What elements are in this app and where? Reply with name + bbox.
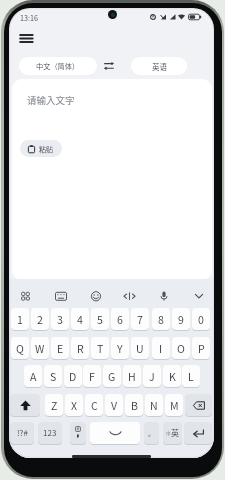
staticText: Y xyxy=(117,341,123,356)
button[interactable]: H xyxy=(123,365,141,387)
staticText: 13:16 xyxy=(20,13,38,23)
button[interactable]: 4 xyxy=(71,308,89,330)
button[interactable]: 粘贴 xyxy=(20,140,62,157)
staticText: 英语 xyxy=(152,61,167,72)
staticText: R xyxy=(77,341,84,356)
staticText: Q xyxy=(16,341,24,356)
staticText: 6 xyxy=(117,312,123,327)
staticText: 中文（简体） xyxy=(36,61,80,71)
staticText: X xyxy=(71,398,78,413)
button[interactable]: 5 xyxy=(91,308,109,330)
button[interactable]: Y xyxy=(111,337,129,359)
button[interactable]: T xyxy=(91,337,109,359)
staticText: 粘贴 xyxy=(39,144,53,154)
staticText: G xyxy=(108,369,116,384)
button[interactable]: K xyxy=(163,365,181,387)
button[interactable]: 7 xyxy=(131,308,149,330)
staticText: B xyxy=(131,398,138,413)
button[interactable]: 3 xyxy=(51,308,69,330)
button[interactable]: 9 xyxy=(172,308,190,330)
button[interactable] xyxy=(10,394,40,416)
staticText: 3 xyxy=(57,312,63,327)
button[interactable]: 中文（简体） xyxy=(19,57,97,75)
button[interactable]: S xyxy=(44,365,62,387)
staticText: P xyxy=(198,341,205,356)
button[interactable] xyxy=(70,422,86,444)
staticText: 中 xyxy=(166,430,171,437)
staticText: 9 xyxy=(178,312,184,327)
staticText: 5 xyxy=(97,312,103,327)
button[interactable]: D xyxy=(64,365,82,387)
button[interactable]: B xyxy=(125,394,143,416)
staticText: 123 xyxy=(43,427,57,439)
staticText: T xyxy=(97,341,104,356)
staticText: 。 xyxy=(148,428,155,438)
staticText: L xyxy=(188,369,194,384)
staticText: W xyxy=(35,341,45,356)
staticText: 英 xyxy=(171,427,179,439)
staticText: N xyxy=(150,398,158,413)
button[interactable]: 6 xyxy=(111,308,129,330)
button[interactable]: Z xyxy=(45,394,63,416)
staticText: S xyxy=(50,369,57,384)
staticText: 7 xyxy=(137,312,143,327)
button[interactable]: 0 xyxy=(192,308,210,330)
button[interactable]: 1 xyxy=(11,308,29,330)
staticText: F xyxy=(89,369,95,384)
button[interactable] xyxy=(184,422,212,444)
button[interactable]: P xyxy=(192,337,210,359)
button[interactable]: I xyxy=(152,337,170,359)
staticText: 8 xyxy=(158,312,164,327)
staticText: 2 xyxy=(37,312,43,327)
button[interactable]: 2 xyxy=(31,308,49,330)
staticText: J xyxy=(149,369,155,384)
staticText: E xyxy=(57,341,64,356)
button[interactable]: V xyxy=(105,394,123,416)
button[interactable]: C xyxy=(85,394,103,416)
button[interactable] xyxy=(90,422,140,444)
button[interactable]: 。 xyxy=(144,422,159,444)
button[interactable]: A xyxy=(24,365,42,387)
button[interactable]: G xyxy=(103,365,121,387)
button[interactable] xyxy=(103,61,115,71)
button[interactable]: F xyxy=(83,365,101,387)
button[interactable]: M xyxy=(165,394,183,416)
button[interactable]: U xyxy=(131,337,149,359)
staticText: I xyxy=(159,341,163,356)
staticText: 1 xyxy=(17,312,23,327)
button[interactable]: X xyxy=(65,394,83,416)
staticText: U xyxy=(136,341,144,356)
staticText: C xyxy=(91,398,98,413)
staticText: !?# xyxy=(17,427,28,439)
button[interactable]: 8 xyxy=(152,308,170,330)
button[interactable]: 英语 xyxy=(131,57,187,75)
button[interactable]: W xyxy=(31,337,49,359)
button[interactable]: N xyxy=(145,394,163,416)
button[interactable]: L xyxy=(182,365,200,387)
staticText: D xyxy=(69,369,77,384)
staticText: Z xyxy=(51,398,58,413)
button[interactable]: Q xyxy=(11,337,29,359)
button[interactable]: 中 xyxy=(163,422,182,444)
staticText: O xyxy=(177,341,185,356)
staticText: M xyxy=(170,398,179,413)
button[interactable]: E xyxy=(51,337,69,359)
button[interactable]: R xyxy=(71,337,89,359)
button[interactable]: 123 xyxy=(38,422,62,444)
staticText: A xyxy=(30,369,37,384)
button[interactable] xyxy=(20,34,33,44)
button[interactable] xyxy=(185,394,212,416)
button[interactable]: J xyxy=(143,365,161,387)
staticText: 请输入文字 xyxy=(27,93,75,107)
button[interactable]: O xyxy=(172,337,190,359)
staticText: 4 xyxy=(77,312,83,327)
staticText: 0 xyxy=(198,312,204,327)
staticText: K xyxy=(169,369,176,384)
staticText: V xyxy=(111,398,118,413)
staticText: H xyxy=(128,369,136,384)
button[interactable]: !?# xyxy=(10,422,34,444)
